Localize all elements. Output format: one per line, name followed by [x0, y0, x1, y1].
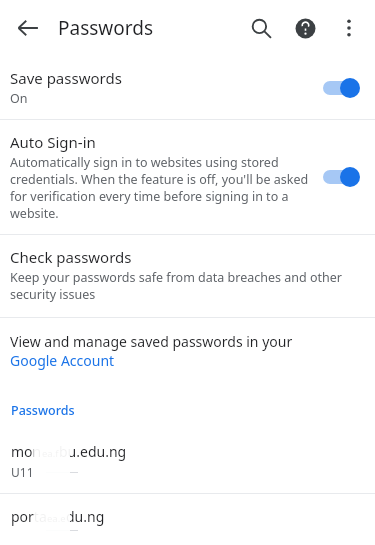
button[interactable]: Search — [239, 6, 283, 50]
staticText: du.ng — [66, 507, 105, 526]
staticText: bu.edu.ng — [59, 442, 127, 461]
staticText: Auto Sign-in — [10, 132, 96, 152]
button[interactable]: Help — [283, 6, 327, 50]
button[interactable]: View and manage saved passwords in your … — [0, 318, 375, 384]
staticText: ea.f — [42, 447, 59, 460]
staticText: Check passwords — [10, 247, 132, 267]
button[interactable]: Save passwords — [0, 56, 375, 119]
staticText: Passwords — [58, 15, 154, 41]
button[interactable]: Back — [6, 6, 50, 50]
staticText: View and manage saved passwords in your … — [10, 332, 335, 370]
staticText: U11 — [11, 464, 34, 480]
staticText: Save passwords — [10, 68, 122, 88]
button[interactable]: porta — [0, 494, 375, 545]
staticText: Passwords — [11, 402, 75, 419]
staticText: Automatically sign in to websites using … — [10, 154, 311, 222]
staticText: mon — [11, 442, 42, 461]
button[interactable]: Auto Sign-in — [0, 120, 375, 234]
button[interactable]: More options — [327, 6, 371, 50]
button[interactable]: Check passwords — [0, 235, 375, 317]
staticText: Keep your passwords safe from data breac… — [10, 269, 361, 303]
staticText: porta — [11, 507, 47, 526]
button[interactable]: mon — [0, 429, 375, 493]
staticText: On — [10, 90, 28, 107]
staticText: ea.e — [47, 512, 66, 525]
